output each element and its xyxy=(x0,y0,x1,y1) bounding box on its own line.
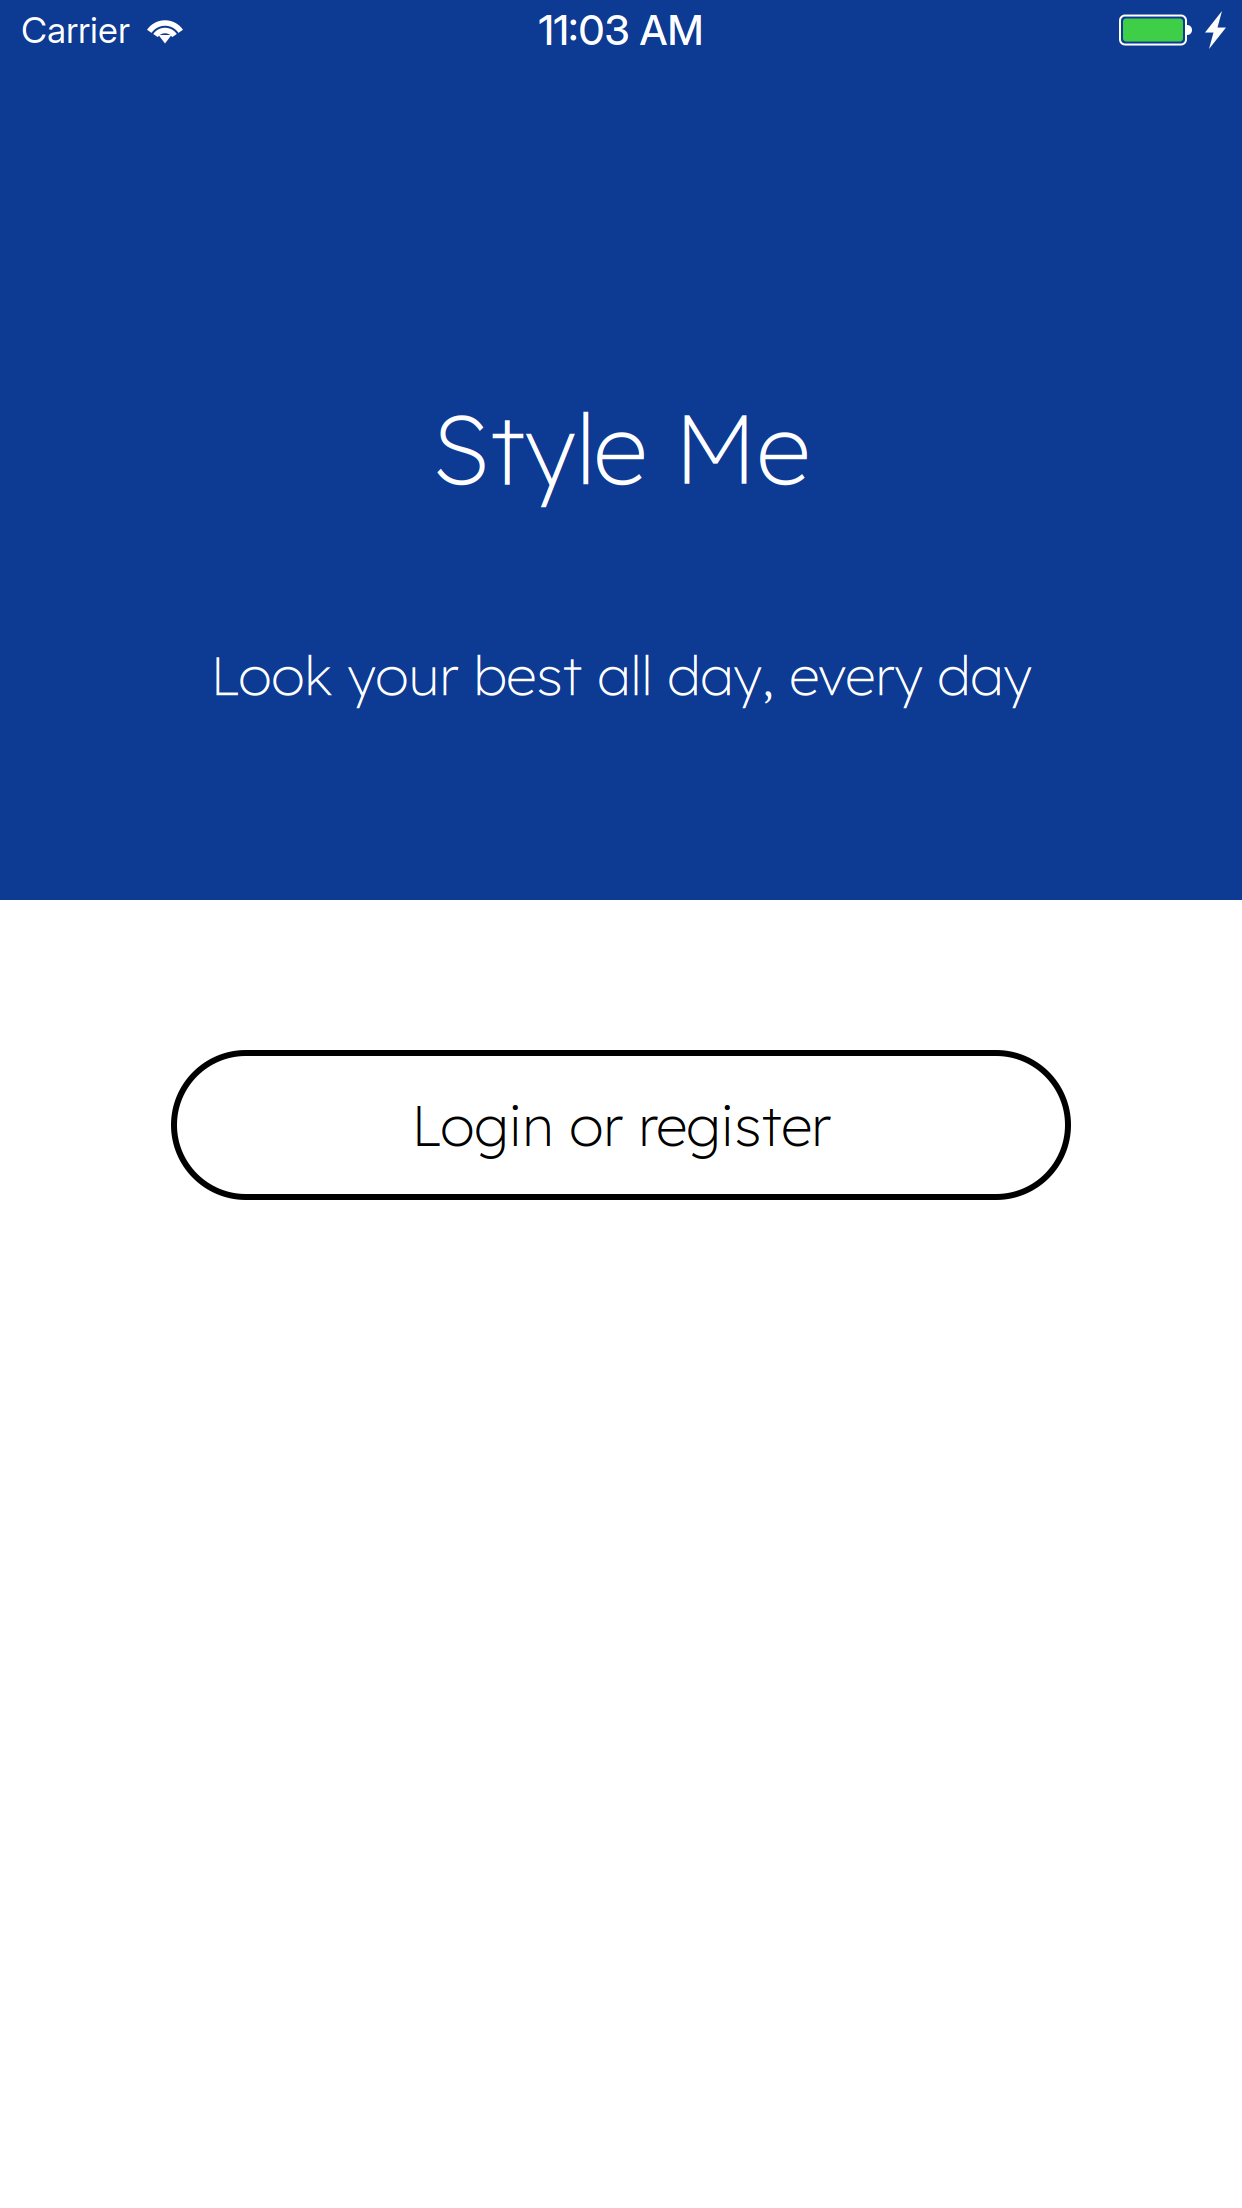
staticText: Carrier xyxy=(21,8,130,52)
staticText: 11:03 AM xyxy=(538,5,703,55)
staticText: Style Me xyxy=(432,387,810,509)
staticText: Look your best all day, every day xyxy=(210,641,1031,709)
button[interactable]: Login or register xyxy=(174,1053,1068,1197)
staticText: Login or register xyxy=(411,1090,830,1160)
